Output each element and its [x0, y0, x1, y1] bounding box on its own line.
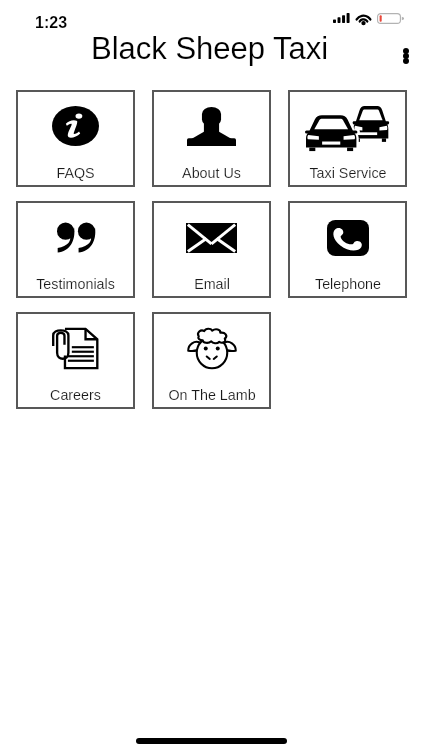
staticText: 1:23 — [35, 14, 68, 32]
staticText: Telephone — [315, 276, 381, 292]
button[interactable]: Email — [152, 201, 271, 298]
staticText: Email — [194, 276, 230, 292]
button[interactable]: FAQS — [16, 90, 135, 187]
button[interactable]: Careers — [16, 312, 135, 409]
staticText: On The Lamb — [168, 387, 256, 403]
button[interactable]: Testimonials — [16, 201, 135, 298]
staticText: Testimonials — [36, 276, 115, 292]
staticText: Taxi Service — [309, 165, 387, 181]
button[interactable]: About Us — [152, 90, 271, 187]
staticText: About Us — [182, 165, 241, 181]
button[interactable]: Telephone — [288, 201, 407, 298]
button[interactable]: On The Lamb — [152, 312, 271, 409]
staticText: Black Sheep Taxi — [91, 31, 329, 66]
staticText: Careers — [50, 387, 101, 403]
staticText: FAQS — [56, 165, 95, 181]
button[interactable]: More options — [390, 40, 422, 72]
button[interactable]: Taxi Service — [288, 90, 407, 187]
